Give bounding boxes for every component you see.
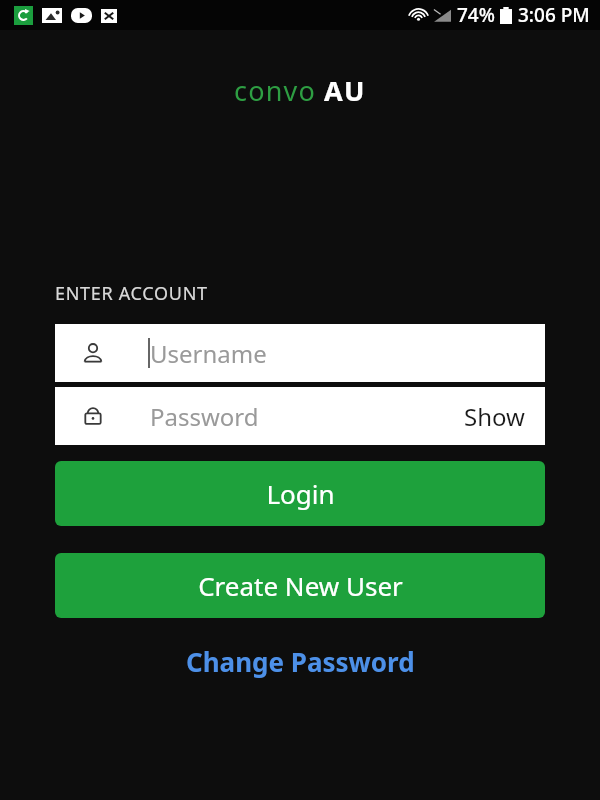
button[interactable]: Show <box>462 400 527 433</box>
staticText: ENTER ACCOUNT <box>55 281 208 306</box>
staticText: AU <box>324 72 366 109</box>
staticText: 3:06 PM <box>518 2 590 28</box>
staticText: Show <box>464 400 525 433</box>
button[interactable]: Login <box>55 461 545 526</box>
button[interactable]: Create New User <box>55 553 545 618</box>
staticText: convo <box>234 72 317 109</box>
staticText: Username <box>150 337 267 370</box>
staticText: Change Password <box>186 644 415 679</box>
staticText: 74% <box>457 2 495 28</box>
staticText: Password <box>150 400 462 433</box>
button[interactable]: Username <box>55 324 545 382</box>
button[interactable]: Password <box>55 387 545 445</box>
staticText: Login <box>266 476 335 511</box>
staticText: Create New User <box>198 568 403 603</box>
button[interactable]: Change Password <box>170 638 431 685</box>
